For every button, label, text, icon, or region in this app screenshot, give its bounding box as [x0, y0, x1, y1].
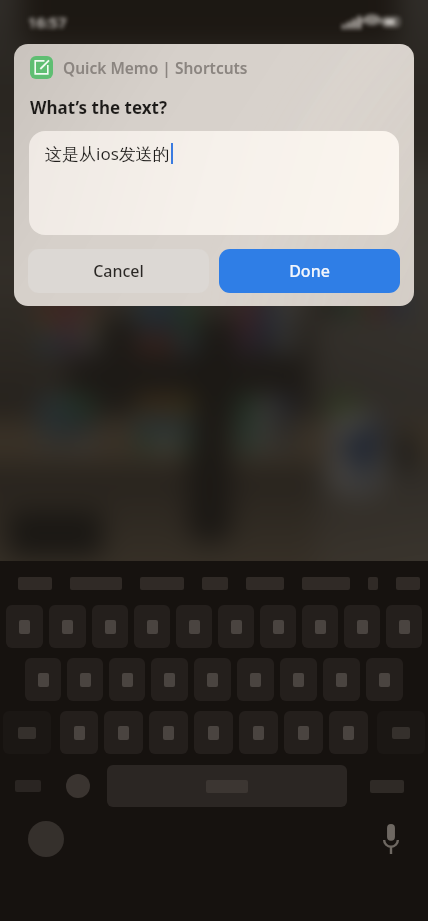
button[interactable]: [60, 711, 98, 754]
button[interactable]: [280, 658, 317, 701]
button[interactable]: [239, 711, 278, 754]
button[interactable]: Return: [350, 764, 424, 808]
button[interactable]: [194, 658, 231, 701]
button[interactable]: [104, 711, 143, 754]
button[interactable]: [386, 605, 422, 648]
button[interactable]: [323, 658, 360, 701]
button[interactable]: [260, 605, 296, 648]
button[interactable]: Cancel: [28, 249, 209, 293]
button[interactable]: [176, 605, 212, 648]
button[interactable]: [366, 658, 403, 701]
button[interactable]: Space: [107, 765, 347, 807]
button[interactable]: [218, 605, 254, 648]
button[interactable]: [67, 658, 103, 701]
staticText: Cancel: [93, 260, 144, 282]
button[interactable]: [194, 711, 233, 754]
staticText: 16:57: [28, 12, 67, 32]
button[interactable]: [284, 711, 323, 754]
button[interactable]: [134, 605, 170, 648]
button[interactable]: [149, 711, 188, 754]
button[interactable]: [237, 658, 274, 701]
button[interactable]: Emoji: [52, 764, 104, 808]
button[interactable]: delete: [377, 711, 425, 754]
button[interactable]: Dictate: [382, 824, 400, 854]
staticText: Quick Memo | Shortcuts: [63, 57, 248, 78]
button[interactable]: Done: [219, 249, 400, 293]
button[interactable]: [25, 658, 61, 701]
button[interactable]: [6, 605, 43, 648]
button[interactable]: shift: [3, 711, 51, 754]
button[interactable]: [368, 577, 378, 590]
button[interactable]: [302, 605, 338, 648]
button[interactable]: Numbers: [4, 764, 52, 808]
button[interactable]: [151, 658, 188, 701]
button[interactable]: [92, 605, 128, 648]
staticText: 这是从ios发送的: [45, 142, 170, 165]
staticText: What’s the text?: [30, 96, 168, 119]
button[interactable]: [344, 605, 380, 648]
button[interactable]: 这是从ios发送的: [29, 131, 399, 235]
button[interactable]: Switch keyboard: [28, 821, 64, 857]
staticText: Done: [289, 260, 330, 282]
button[interactable]: [109, 658, 145, 701]
button[interactable]: [49, 605, 86, 648]
button[interactable]: [329, 711, 368, 754]
